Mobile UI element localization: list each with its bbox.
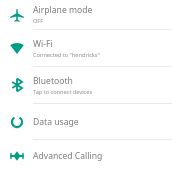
staticText: Wi-Fi — [33, 38, 53, 50]
other: Airplane mode — [0, 0, 33, 29]
button[interactable]: Data usage — [0, 104, 172, 139]
staticText: OFF — [33, 17, 44, 25]
staticText: Data usage — [33, 116, 79, 128]
staticText: Bluetooth — [33, 75, 73, 87]
button[interactable]: Wi-Fi — [0, 30, 172, 66]
other: Advanced Calling — [0, 140, 33, 172]
other: Data usage — [0, 104, 33, 139]
button[interactable]: Bluetooth — [0, 67, 172, 103]
staticText: Advanced Calling — [33, 150, 103, 162]
staticText: Airplane mode — [33, 4, 93, 16]
staticText: Tap to connect devices — [33, 88, 93, 96]
button[interactable]: Airplane mode — [0, 0, 172, 29]
other: Wi-Fi — [0, 30, 33, 66]
button[interactable]: Advanced Calling — [0, 140, 172, 172]
other: Bluetooth — [0, 67, 33, 103]
staticText: Connected to "hendricks" — [33, 51, 100, 59]
